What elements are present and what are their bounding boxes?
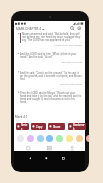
button[interactable]: Highlight colour	[56, 135, 63, 142]
staticText: Share	[53, 125, 61, 129]
staticText: Mark 4:1	[15, 115, 28, 119]
button[interactable]: Back	[27, 155, 33, 161]
staticText: Then the LORD said to Moses, "Reach out …	[20, 91, 82, 103]
staticText: ויען משה ויאמר והן לא יאמינו לי	[38, 44, 82, 47]
button[interactable]: Highlight colour	[76, 135, 83, 142]
button[interactable]: Highlight colour	[17, 135, 24, 142]
button[interactable]: Share	[48, 123, 65, 130]
staticText: And He said, "Cast it on the ground." So…	[20, 71, 82, 80]
button[interactable]: Highlight colour	[66, 135, 73, 142]
button[interactable]: Read	[24, 144, 32, 152]
button[interactable]: Recent apps	[60, 155, 66, 161]
button[interactable]: MARK CHAPTER 4	[16, 26, 45, 32]
button[interactable]: Bookmark	[68, 123, 86, 130]
button[interactable]: Settings	[76, 25, 82, 31]
staticText: Bookmark	[73, 123, 85, 130]
button[interactable]: Notes	[16, 123, 29, 130]
button[interactable]: Copy	[31, 123, 46, 130]
staticText: Moses answered and said, "But behold, th…	[22, 32, 82, 41]
staticText: מה זה בידך ויאמר מטה	[44, 61, 82, 64]
staticText: MARK CHAPTER 4	[16, 27, 41, 31]
button[interactable]: Highlight colour	[27, 135, 34, 142]
button[interactable]: Account	[68, 144, 76, 152]
button[interactable]: Search	[69, 25, 75, 31]
staticText: Copy	[36, 125, 43, 129]
button[interactable]: Highlight colour	[37, 135, 44, 142]
button[interactable]: Library	[45, 144, 53, 152]
staticText: And the LORD said to him, "What is that …	[20, 52, 82, 58]
button[interactable]: Highlight colour	[46, 135, 53, 142]
button[interactable]: Home	[43, 155, 49, 161]
staticText: Notes	[21, 123, 28, 130]
staticText: וישליכהו ארצה ויהי לנחש	[40, 83, 82, 86]
button[interactable]: Highlight colour	[86, 135, 89, 142]
